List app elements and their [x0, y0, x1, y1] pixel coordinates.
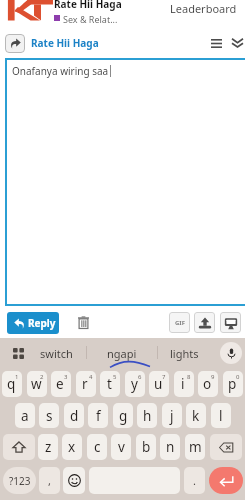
button[interactable]: Enter [209, 467, 243, 494]
button[interactable]: Backspace [210, 434, 242, 460]
button[interactable]: Rate Hii Haga [31, 36, 99, 50]
staticText: Rate Hii Haga [54, 0, 122, 11]
button[interactable]: Upload [194, 312, 215, 333]
staticText: 3 [64, 373, 68, 381]
button[interactable]: q [2, 371, 22, 397]
button[interactable]: p [223, 371, 243, 397]
button[interactable]: Shift [3, 434, 35, 460]
button[interactable]: b [136, 434, 156, 460]
button[interactable]: u [149, 371, 169, 397]
staticText: a [21, 407, 29, 425]
button[interactable]: . [184, 467, 205, 494]
staticText: c [94, 438, 101, 456]
button[interactable]: o [198, 371, 218, 397]
button[interactable]: h [137, 403, 157, 428]
staticText: d [70, 407, 79, 425]
staticText: GIF [175, 319, 185, 327]
staticText: Reply [28, 316, 56, 330]
staticText: n [166, 438, 175, 456]
staticText: 7 [162, 373, 166, 381]
button[interactable]: d [64, 403, 84, 428]
staticText: l [219, 407, 223, 425]
button[interactable]: c [87, 434, 107, 460]
button[interactable]: t [100, 371, 120, 397]
staticText: t [107, 375, 112, 393]
button[interactable]: Delete [76, 314, 91, 330]
button[interactable]: g [113, 403, 133, 428]
button[interactable]: f [88, 403, 108, 428]
button[interactable]: Reply [7, 312, 59, 334]
staticText: k [192, 407, 200, 425]
staticText: o [203, 375, 212, 393]
staticText: 0 [236, 373, 240, 381]
button[interactable]: j [162, 403, 182, 428]
staticText: 4 [89, 373, 93, 381]
staticText: p [228, 375, 237, 393]
button[interactable]: , [39, 467, 60, 494]
staticText: g [119, 407, 128, 425]
staticText: w [31, 375, 42, 393]
button[interactable]: l [211, 403, 231, 428]
staticText: 6 [138, 373, 142, 381]
button[interactable]: k [186, 403, 206, 428]
staticText: i [181, 375, 185, 393]
button[interactable]: Leaderboard [170, 1, 237, 16]
button[interactable]: ?123 [3, 467, 36, 494]
staticText: 5 [113, 373, 117, 381]
staticText: 8 [187, 373, 191, 381]
staticText: ?123 [9, 474, 31, 488]
staticText: x [68, 438, 76, 456]
staticText: s [46, 407, 53, 425]
button[interactable]: Collapse [226, 32, 245, 54]
staticText: 1 [15, 373, 19, 381]
button[interactable]: r [76, 371, 96, 397]
button[interactable]: i [174, 371, 194, 397]
button[interactable]: Reply to post [5, 34, 25, 53]
staticText: v [118, 438, 125, 456]
staticText: q [7, 375, 16, 393]
button[interactable]: Menu [205, 32, 227, 54]
button[interactable]: Voice input [220, 342, 242, 364]
button[interactable]: y [125, 371, 145, 397]
staticText: y [131, 375, 138, 393]
staticText: e [56, 375, 64, 393]
staticText: h [143, 407, 152, 425]
button[interactable]: Emoji [63, 467, 85, 494]
staticText: 2 [40, 373, 44, 381]
button[interactable]: x [62, 434, 82, 460]
button[interactable]: GIF [169, 312, 190, 333]
button[interactable]: Space [89, 467, 180, 494]
button[interactable]: lights [170, 346, 199, 361]
staticText: b [142, 438, 151, 456]
button[interactable]: n [160, 434, 180, 460]
button[interactable]: w [27, 371, 47, 397]
staticText: Sex & Relat... [63, 13, 118, 23]
button[interactable]: e [51, 371, 71, 397]
staticText: . [193, 473, 196, 488]
staticText: , [48, 473, 51, 488]
staticText: z [45, 438, 52, 456]
staticText: Onafanya wiring saa [12, 64, 109, 78]
button[interactable]: Apps [8, 343, 28, 363]
button[interactable]: Screen share [220, 312, 241, 333]
button[interactable]: ngapi [107, 346, 137, 361]
staticText: j [170, 407, 174, 425]
button[interactable]: a [15, 403, 35, 428]
button[interactable]: v [111, 434, 131, 460]
button[interactable]: m [185, 434, 205, 460]
staticText: 9 [211, 373, 215, 381]
staticText: r [82, 375, 88, 393]
button[interactable]: z [38, 434, 58, 460]
staticText: m [189, 438, 202, 456]
button[interactable]: s [39, 403, 59, 428]
staticText: u [154, 375, 163, 393]
staticText: f [96, 407, 101, 425]
button[interactable]: switch [40, 346, 73, 361]
